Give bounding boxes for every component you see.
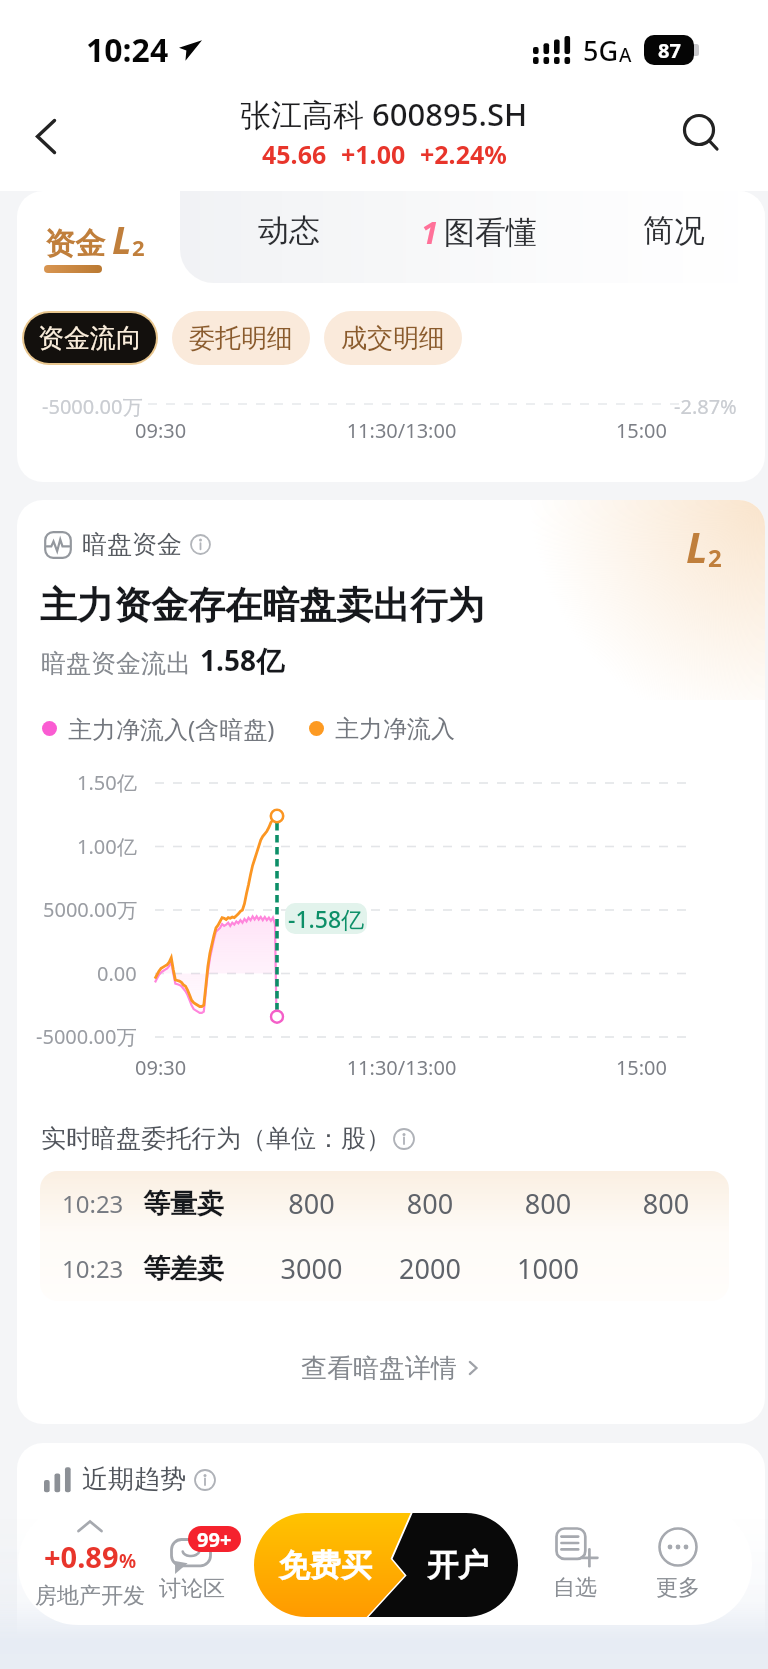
staticText: 1.50亿 — [77, 769, 137, 796]
staticText: 800 — [607, 1185, 725, 1222]
staticText: 2 — [708, 541, 722, 574]
staticText: 2000 — [371, 1250, 489, 1287]
staticText: 资金 — [45, 225, 105, 263]
staticText: -5000.00万 — [42, 393, 143, 420]
staticText: 99+ — [197, 1526, 232, 1552]
staticText: 主力净流入 — [335, 714, 455, 744]
staticText: 1000 — [489, 1250, 607, 1287]
button[interactable]: 委托明细 — [172, 311, 310, 365]
staticText: 动态 — [258, 211, 320, 250]
button[interactable]: Search — [672, 103, 736, 169]
staticText: % — [119, 1548, 137, 1574]
button[interactable]: 资金 — [17, 191, 183, 295]
button[interactable]: 1 — [383, 191, 575, 295]
staticText: 主力资金存在暗盘卖出行为 — [40, 582, 484, 629]
staticText: 11:30/13:00 — [313, 417, 490, 444]
staticText: 讨论区 — [159, 1575, 225, 1603]
staticText: -5000.00万 — [36, 1023, 137, 1050]
staticText: 1 — [421, 211, 439, 253]
staticText: 自选 — [553, 1574, 597, 1602]
staticText: 张江高科 600895.SH — [240, 93, 528, 135]
staticText: 简况 — [643, 211, 705, 250]
staticText: 800 — [371, 1185, 489, 1222]
staticText: 资金流向 — [38, 322, 142, 355]
staticText: 45.66 — [262, 137, 327, 171]
staticText: +2.24% — [420, 137, 507, 171]
staticText: +0.89 — [44, 1537, 119, 1576]
staticText: 等差卖 — [143, 1252, 224, 1286]
button[interactable]: 动态 — [216, 191, 362, 295]
staticText: 5000.00万 — [43, 896, 137, 923]
staticText: 1.58亿 — [200, 641, 284, 679]
staticText: 暗盘资金流出 — [41, 648, 191, 679]
staticText: 5G — [583, 32, 619, 69]
staticText: 09:30 — [135, 417, 313, 444]
staticText: 图看懂 — [444, 213, 537, 252]
button[interactable]: 资金流向 — [24, 313, 156, 363]
staticText: L — [112, 213, 132, 265]
button[interactable]: 成交明细 — [324, 311, 462, 365]
staticText: -2.87% — [674, 393, 737, 420]
staticText: 0.00 — [97, 960, 137, 987]
staticText: 800 — [252, 1185, 371, 1222]
staticText: 等量卖 — [143, 1187, 224, 1221]
button[interactable]: 查看暗盘详情 — [17, 1345, 765, 1391]
staticText: 1.00亿 — [77, 833, 137, 860]
staticText: 10:23 — [62, 1187, 124, 1220]
staticText: A — [619, 42, 632, 68]
button[interactable]: Back — [14, 103, 78, 169]
staticText: 15:00 — [490, 1054, 667, 1081]
staticText: 暗盘资金 — [82, 529, 182, 560]
staticText: 3000 — [252, 1250, 371, 1287]
staticText: 近期趋势 — [82, 1463, 186, 1496]
staticText: 查看暗盘详情 — [301, 1352, 457, 1385]
staticText: L — [686, 518, 708, 575]
staticText: 成交明细 — [341, 322, 445, 355]
staticText: 房地产开发 — [35, 1582, 145, 1610]
staticText: 开户 — [427, 1546, 489, 1585]
staticText: 15:00 — [490, 417, 667, 444]
button[interactable]: 99+ — [148, 1504, 236, 1625]
staticText: 委托明细 — [189, 322, 293, 355]
button[interactable]: +0.89 — [28, 1504, 152, 1625]
staticText: 主力净流入(含暗盘) — [68, 712, 275, 745]
staticText: -1.58亿 — [288, 903, 365, 934]
staticText: 09:30 — [135, 1054, 313, 1081]
staticText: 10:24 — [86, 28, 169, 72]
staticText: 87 — [658, 37, 681, 64]
staticText: 更多 — [656, 1574, 700, 1602]
button[interactable]: 更多 — [630, 1504, 726, 1625]
staticText: 2 — [132, 232, 145, 262]
staticText: 11:30/13:00 — [313, 1054, 490, 1081]
staticText: +1.00 — [341, 137, 406, 171]
button[interactable]: 免费买 — [254, 1513, 518, 1617]
staticText: 实时暗盘委托行为（单位：股） — [41, 1123, 391, 1154]
button[interactable]: 简况 — [601, 191, 747, 295]
staticText: 800 — [489, 1185, 607, 1222]
staticText: 免费买 — [279, 1546, 372, 1585]
button[interactable]: 自选 — [527, 1504, 623, 1625]
staticText: 10:23 — [62, 1252, 124, 1285]
